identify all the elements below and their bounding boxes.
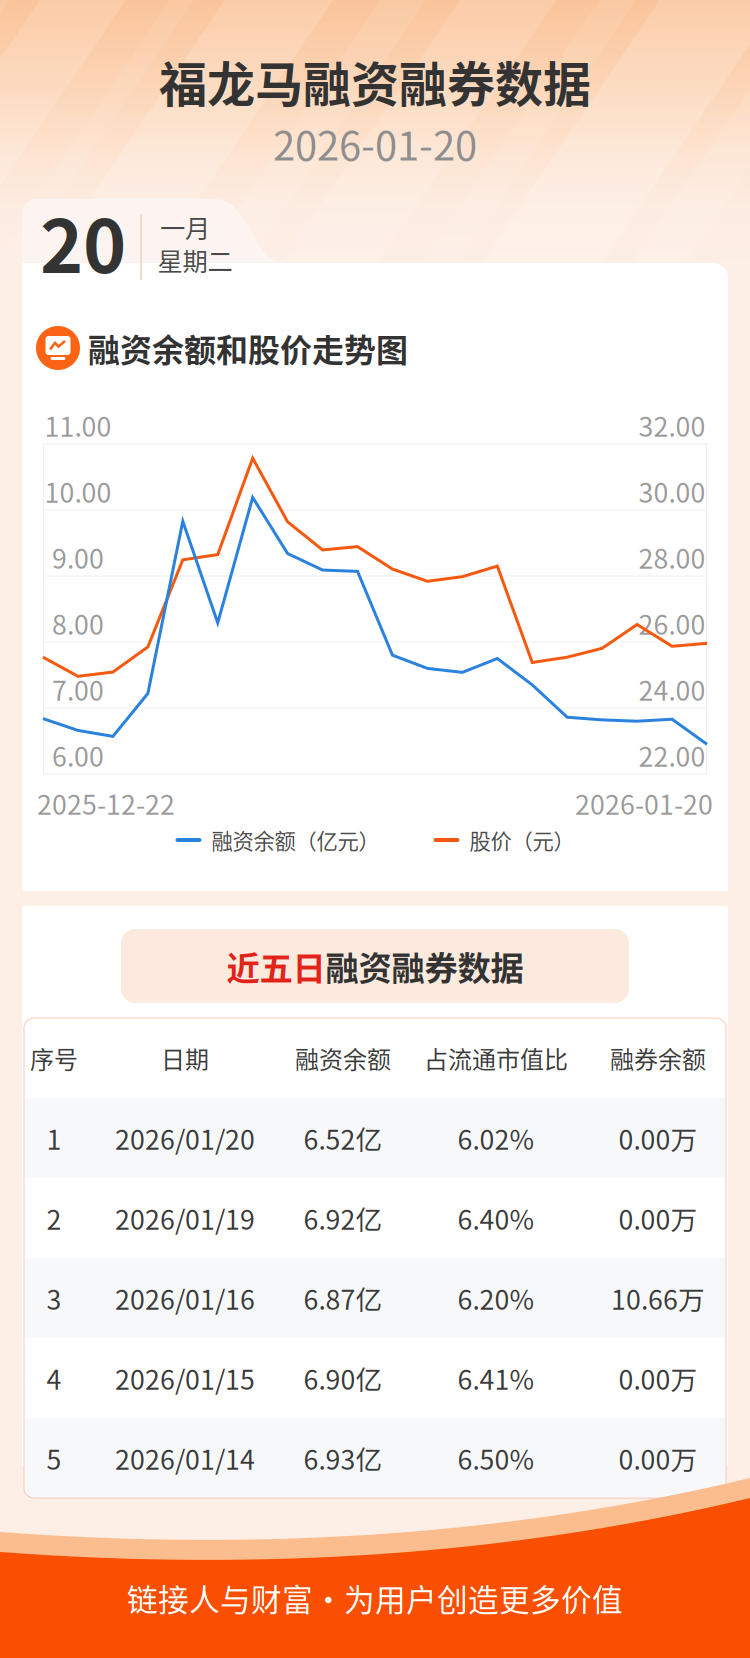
staticText: 6.92亿 [303,1199,382,1237]
staticText: 6.02% [457,1119,534,1157]
staticText: 2026/01/19 [115,1199,255,1237]
staticText: 9.00 [52,538,104,576]
staticText: 24.00 [638,670,705,708]
staticText: 3 [46,1279,61,1317]
staticText: 4 [46,1359,61,1397]
staticText: 20 [40,188,126,294]
staticText: 股价（元） [469,825,574,855]
staticText: 2026-01-20 [273,114,477,172]
staticText: 6.93亿 [303,1439,382,1477]
staticText: 0.00万 [618,1199,697,1237]
staticText: 2026/01/16 [115,1279,255,1317]
staticText: 10.66万 [611,1279,705,1317]
staticText: 日期 [161,1041,209,1075]
staticText: 2026/01/15 [115,1359,255,1397]
staticText: 6.00 [52,736,104,774]
staticText: 0.00万 [618,1439,697,1477]
staticText: 融资余额（亿元） [211,825,379,855]
staticText: 链接人与财富·为用户创造更多价值 [127,1576,623,1620]
staticText: 融券余额 [610,1041,706,1075]
staticText: 6.87亿 [303,1279,382,1317]
staticText: 2025-12-22 [37,784,175,822]
staticText: 2026-01-20 [575,784,713,822]
staticText: 0.00万 [618,1119,697,1157]
staticText: 6.52亿 [303,1119,382,1157]
staticText: 近五日 [226,942,325,990]
staticText: 6.50% [457,1439,534,1477]
staticText: 10.00 [44,472,111,510]
staticText: 0.00万 [618,1359,697,1397]
staticText: 5 [46,1439,61,1477]
staticText: 序号 [30,1041,78,1075]
staticText: 1 [46,1119,61,1157]
staticText: 6.20% [457,1279,534,1317]
staticText: 福龙马融资融券数据 [159,46,591,116]
staticText: 2026/01/20 [115,1119,255,1157]
staticText: 融资余额 [295,1041,391,1075]
staticText: 一月 [160,209,210,245]
staticText: 22.00 [638,736,705,774]
staticText: 28.00 [638,538,705,576]
staticText: 占流通市值比 [424,1041,568,1075]
staticText: 11.00 [44,406,111,444]
staticText: 8.00 [52,604,104,642]
staticText: 星期二 [157,242,232,278]
staticText: 6.90亿 [303,1359,382,1397]
staticText: 30.00 [638,472,705,510]
staticText: 26.00 [638,604,705,642]
staticText: 6.41% [457,1359,534,1397]
staticText: 2026/01/14 [115,1439,255,1477]
staticText: 2 [46,1199,61,1237]
staticText: 32.00 [638,406,705,444]
staticText: 融资余额和股价走势图 [88,325,408,371]
staticText: 融资融券数据 [325,942,523,990]
staticText: 6.40% [457,1199,534,1237]
staticText: 7.00 [52,670,104,708]
